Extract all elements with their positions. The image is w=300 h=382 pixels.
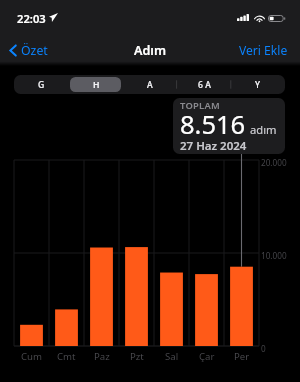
staticText: 0: [261, 343, 266, 354]
staticText: 20.000: [261, 157, 287, 168]
staticText: 27 Haz 2024: [180, 138, 247, 154]
button[interactable]: H: [69, 75, 123, 94]
button[interactable]: G: [14, 75, 69, 94]
button[interactable]: TOPLAM: [173, 98, 285, 154]
staticText: Çar: [199, 350, 215, 363]
button[interactable]: 6 A: [177, 75, 231, 94]
staticText: TOPLAM: [180, 99, 220, 112]
staticText: Cum: [21, 350, 42, 363]
staticText: Pzt: [130, 350, 144, 363]
staticText: A: [147, 79, 153, 91]
staticText: Veri Ekle: [239, 42, 288, 58]
staticText: Paz: [94, 350, 110, 363]
staticText: G: [38, 79, 45, 91]
button[interactable]: Veri Ekle: [239, 41, 288, 59]
staticText: adım: [250, 122, 277, 137]
staticText: Y: [255, 79, 261, 91]
button[interactable]: Y: [231, 75, 285, 94]
staticText: Özet: [21, 42, 48, 59]
staticText: 8.516: [180, 107, 246, 142]
staticText: H: [93, 79, 100, 91]
staticText: Cmt: [57, 350, 76, 363]
staticText: 22:03: [17, 11, 46, 26]
button[interactable]: A: [123, 75, 177, 94]
staticText: 6 A: [198, 79, 211, 91]
staticText: Per: [234, 350, 250, 363]
staticText: Sal: [165, 350, 179, 363]
staticText: Adım: [134, 42, 167, 59]
staticText: 10.000: [261, 250, 287, 261]
button[interactable]: Özet: [9, 41, 48, 59]
